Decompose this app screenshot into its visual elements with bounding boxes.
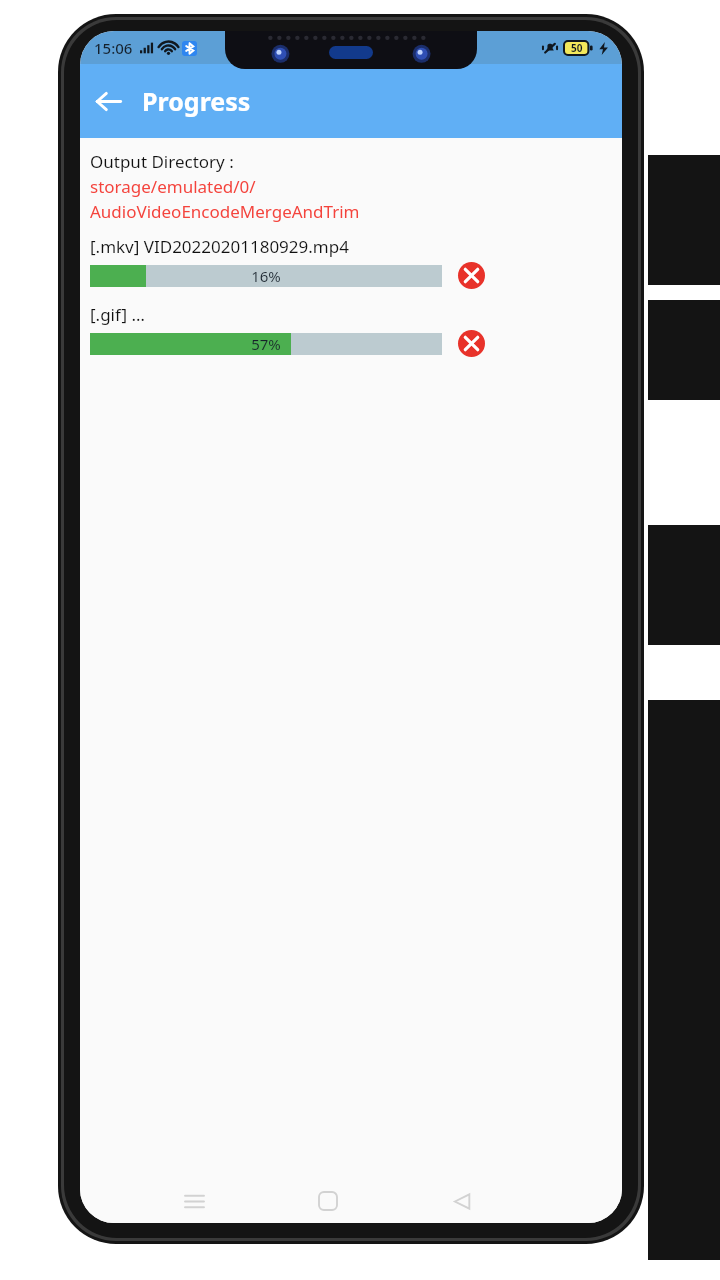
button[interactable]: 57%	[90, 333, 442, 355]
staticText: 15:06	[94, 38, 133, 58]
staticText: [.mkv] VID20220201180929.mp4	[90, 235, 349, 258]
staticText: Output Directory :	[90, 150, 234, 173]
staticText: storage/emulated/0/	[90, 175, 256, 198]
staticText: Progress	[142, 84, 251, 118]
button[interactable]: 16%	[90, 265, 442, 287]
button[interactable]: Cancel	[458, 262, 485, 289]
button[interactable]: Recent apps	[172, 1179, 216, 1223]
staticText: 16%	[251, 266, 281, 286]
button[interactable]: Back	[80, 73, 136, 129]
staticText: [.gif] …	[90, 303, 145, 326]
staticText: 57%	[251, 334, 281, 354]
staticText: AudioVideoEncodeMergeAndTrim	[90, 200, 360, 223]
button[interactable]: Cancel	[458, 330, 485, 357]
button[interactable]: Back	[440, 1179, 484, 1223]
button[interactable]: Home	[306, 1179, 350, 1223]
staticText: 50	[571, 41, 583, 55]
